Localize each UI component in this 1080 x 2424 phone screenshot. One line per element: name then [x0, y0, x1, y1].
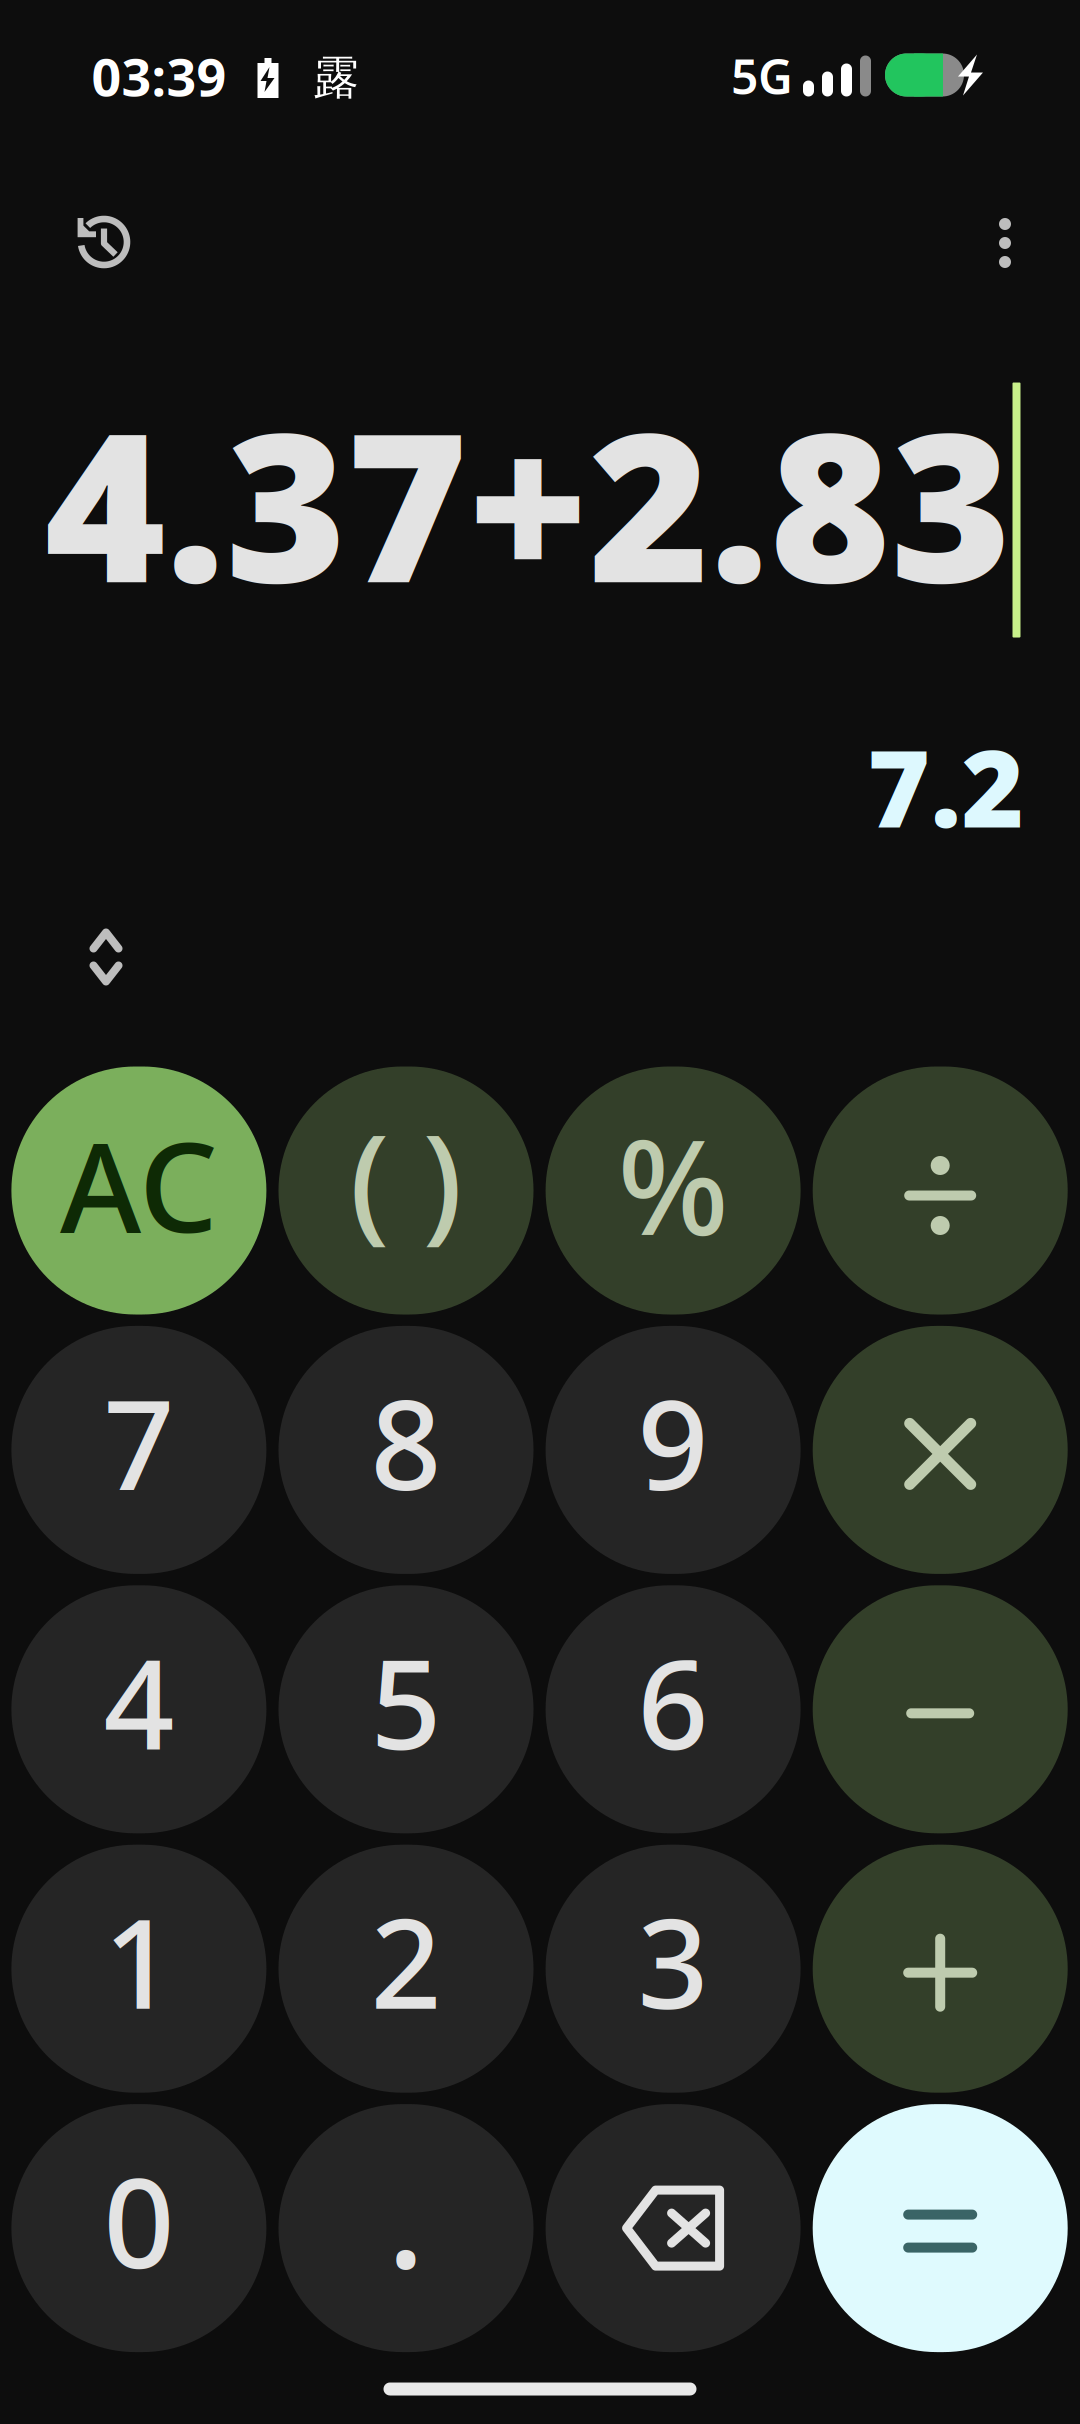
staticText: 1 — [103, 1878, 174, 2043]
staticText: 5G — [731, 44, 793, 108]
staticText: 露 — [313, 50, 358, 106]
staticText: . — [387, 2122, 425, 2306]
button[interactable]: 1 — [11, 1845, 266, 2093]
staticText: ( ) — [349, 1092, 462, 1262]
button[interactable]: More options — [955, 189, 1055, 297]
staticText: 9 — [638, 1360, 709, 1524]
button[interactable]: 6 — [546, 1585, 801, 1833]
button[interactable]: ( ) — [278, 1066, 533, 1314]
staticText: 5 — [370, 1619, 441, 1784]
button[interactable]: Backspace — [546, 2104, 801, 2352]
button[interactable]: 0 — [11, 2104, 266, 2352]
staticText: 7.2 — [867, 715, 1024, 857]
button[interactable]: Multiply — [813, 1326, 1068, 1574]
button[interactable]: Expand — [50, 901, 162, 1013]
button[interactable]: AC — [11, 1066, 266, 1314]
button[interactable]: % — [546, 1066, 801, 1314]
button[interactable]: Plus — [813, 1845, 1068, 2093]
button[interactable]: Divide — [813, 1066, 1068, 1314]
staticText: AC — [60, 1102, 218, 1267]
button[interactable]: 4 — [11, 1585, 266, 1833]
button[interactable]: 5 — [278, 1585, 533, 1833]
staticText: 3 — [638, 1878, 709, 2043]
staticText: 2 — [370, 1878, 441, 2043]
staticText: 03:39 — [91, 41, 226, 111]
staticText: 8 — [370, 1360, 441, 1524]
staticText: 4 — [103, 1619, 174, 1784]
staticText: 7 — [103, 1360, 174, 1524]
button[interactable]: 9 — [546, 1326, 801, 1574]
button[interactable]: 2 — [278, 1845, 533, 2093]
button[interactable]: . — [278, 2104, 533, 2352]
staticText: 6 — [638, 1619, 709, 1784]
button[interactable]: 8 — [278, 1326, 533, 1574]
button[interactable]: Equals — [813, 2104, 1068, 2352]
staticText: 4.37+2.83 — [44, 365, 1011, 639]
staticText: % — [618, 1098, 729, 1271]
button[interactable]: Minus — [813, 1585, 1068, 1833]
button[interactable]: 3 — [546, 1845, 801, 2093]
button[interactable]: History — [50, 189, 158, 297]
button[interactable]: 7 — [11, 1326, 266, 1574]
staticText: 0 — [103, 2138, 174, 2302]
